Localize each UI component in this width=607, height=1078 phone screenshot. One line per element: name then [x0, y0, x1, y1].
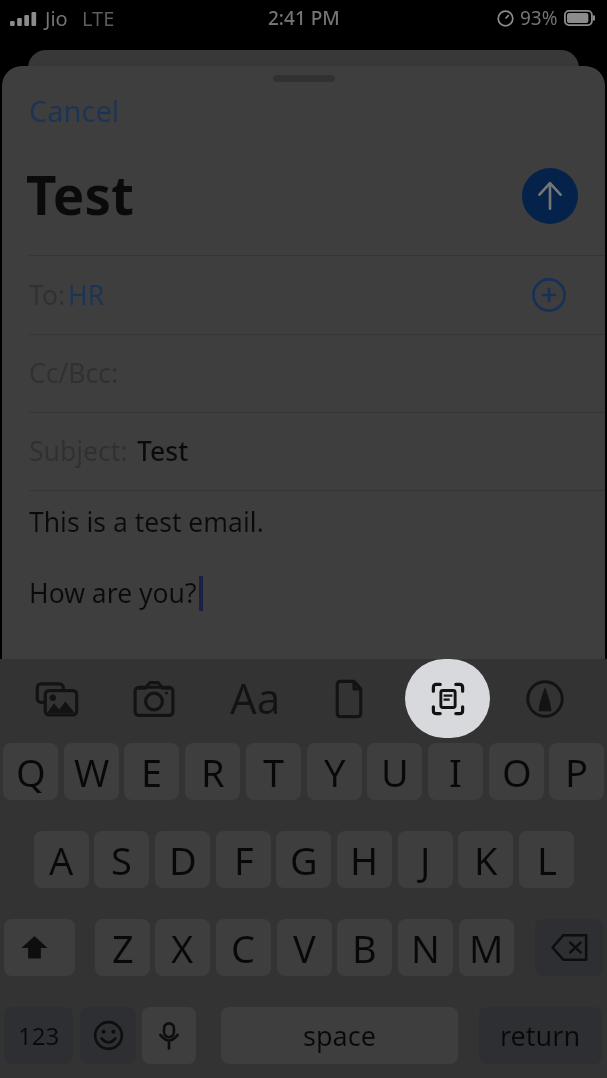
button[interactable]: J [398, 831, 453, 888]
button[interactable]: A [34, 831, 89, 888]
staticText: J [420, 834, 431, 886]
button[interactable]: Scan document [398, 659, 496, 738]
button[interactable]: Shift [4, 919, 75, 976]
staticText: Cancel [29, 91, 120, 130]
staticText: V [293, 922, 316, 974]
button[interactable]: S [94, 831, 149, 888]
button[interactable]: Camera [105, 659, 202, 738]
staticText: Cc/Bcc: [29, 355, 119, 391]
button[interactable]: W [64, 743, 119, 800]
staticText: R [201, 746, 225, 798]
staticText: Y [324, 746, 346, 798]
button[interactable]: Cancel [19, 87, 130, 134]
staticText: 123 [18, 1019, 60, 1052]
button[interactable]: O [489, 743, 544, 800]
button[interactable]: P [549, 743, 604, 800]
button[interactable]: To: [2, 255, 605, 334]
staticText: HR [68, 277, 105, 313]
button[interactable]: R [185, 743, 240, 800]
button[interactable]: U [367, 743, 422, 800]
staticText: H [350, 834, 379, 886]
staticText: How are you? [29, 575, 197, 611]
button[interactable]: Backspace [535, 919, 603, 976]
staticText: Jio [45, 5, 68, 32]
button[interactable]: B [337, 919, 392, 976]
staticText: Subject: [29, 433, 128, 469]
staticText: N [411, 922, 440, 974]
staticText: E [141, 746, 163, 798]
staticText: M [469, 922, 504, 974]
button[interactable]: Format text [202, 659, 300, 738]
button[interactable]: T [246, 743, 301, 800]
staticText: Aa [230, 669, 281, 726]
staticText: Q [16, 746, 46, 798]
staticText: O [502, 746, 532, 798]
staticText: Z [112, 922, 134, 974]
staticText: G [290, 834, 318, 886]
staticText: D [169, 834, 197, 886]
button[interactable]: G [276, 831, 331, 888]
staticText: space [303, 1017, 376, 1054]
staticText: return [500, 1017, 581, 1054]
staticText: A [49, 834, 74, 886]
button[interactable]: M [459, 919, 514, 976]
button[interactable]: Photo library [8, 659, 105, 738]
button[interactable]: Send [522, 168, 578, 224]
button[interactable]: F [216, 831, 271, 888]
staticText: Test [137, 433, 189, 469]
button[interactable]: E [124, 743, 179, 800]
button[interactable]: Subject: [2, 412, 605, 490]
button[interactable]: N [398, 919, 453, 976]
staticText: K [474, 834, 498, 886]
button[interactable]: I [428, 743, 483, 800]
button[interactable]: return [479, 1007, 602, 1064]
button[interactable]: Y [307, 743, 362, 800]
button[interactable]: Q [3, 743, 58, 800]
staticText: T [263, 746, 285, 798]
staticText: C [231, 922, 256, 974]
staticText: W [74, 746, 110, 798]
button[interactable]: Add recipient [523, 269, 575, 321]
staticText: LTE [82, 5, 115, 32]
button[interactable]: X [155, 919, 210, 976]
button[interactable]: Document [300, 659, 398, 738]
button[interactable]: 123 [4, 1007, 73, 1064]
staticText: Test [26, 158, 135, 230]
button[interactable]: L [519, 831, 574, 888]
button[interactable]: H [337, 831, 392, 888]
button[interactable]: Dictate [142, 1007, 196, 1064]
button[interactable]: K [458, 831, 513, 888]
staticText: I [449, 746, 462, 798]
button[interactable]: Emoji [80, 1007, 136, 1064]
staticText: L [537, 834, 557, 886]
staticText: F [234, 834, 254, 886]
staticText: P [565, 746, 588, 798]
staticText: U [381, 746, 409, 798]
staticText: 93% [520, 5, 558, 31]
button[interactable]: Markup [496, 659, 594, 738]
button[interactable]: C [216, 919, 271, 976]
staticText: B [352, 922, 377, 974]
button[interactable]: D [155, 831, 210, 888]
button[interactable]: Z [95, 919, 150, 976]
staticText: 2:41 PM [268, 5, 340, 31]
staticText: X [171, 922, 194, 974]
button[interactable]: V [277, 919, 332, 976]
staticText: S [111, 834, 132, 886]
button[interactable]: space [221, 1007, 458, 1064]
staticText: To: [29, 277, 66, 313]
staticText: This is a test email. [29, 504, 264, 540]
